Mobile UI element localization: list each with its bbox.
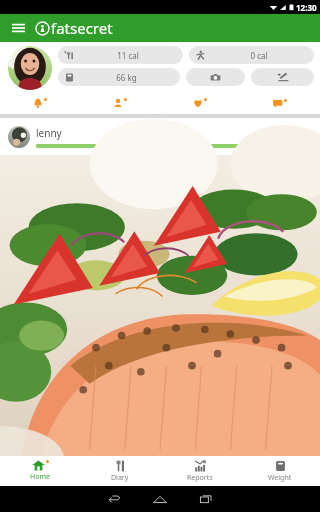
button[interactable]: lenny bbox=[0, 118, 320, 155]
staticText: Weight bbox=[268, 473, 292, 483]
button[interactable]: Take photo bbox=[186, 68, 245, 86]
staticText: Reports bbox=[187, 473, 213, 483]
button[interactable]: Home bbox=[0, 456, 80, 486]
button[interactable]: Notifications bbox=[0, 92, 80, 114]
button[interactable]: Diary bbox=[80, 456, 160, 486]
button[interactable]: Reports bbox=[160, 456, 240, 486]
button[interactable]: Home bbox=[137, 489, 183, 509]
button[interactable]: 0 cal bbox=[189, 46, 314, 64]
button[interactable]: Friends bbox=[80, 92, 160, 114]
button[interactable]: Back bbox=[91, 489, 137, 509]
button[interactable]: Weight bbox=[240, 456, 320, 486]
button[interactable]: Meal photo: grilled salmon with salad bbox=[0, 155, 320, 456]
button[interactable]: Messages bbox=[240, 92, 320, 114]
button[interactable]: 66 kg bbox=[58, 68, 180, 86]
button[interactable]: Open navigation menu bbox=[7, 17, 29, 39]
button[interactable]: Recent apps bbox=[183, 489, 229, 509]
staticText: lenny bbox=[36, 126, 62, 140]
button[interactable]: fatsecret bbox=[36, 18, 113, 38]
staticText: fatsecret bbox=[51, 18, 113, 38]
button[interactable]: Write journal entry bbox=[251, 68, 314, 86]
staticText: Diary bbox=[111, 473, 129, 483]
staticText: 12:30 bbox=[296, 2, 317, 13]
staticText: 66 kg bbox=[116, 72, 137, 83]
staticText: Home bbox=[30, 472, 50, 482]
staticText: 0 cal bbox=[250, 50, 268, 61]
staticText: 11 cal bbox=[117, 50, 139, 61]
button[interactable]: 11 cal bbox=[58, 46, 183, 64]
button[interactable]: Profile photo bbox=[8, 46, 52, 90]
button[interactable]: Likes bbox=[160, 92, 240, 114]
